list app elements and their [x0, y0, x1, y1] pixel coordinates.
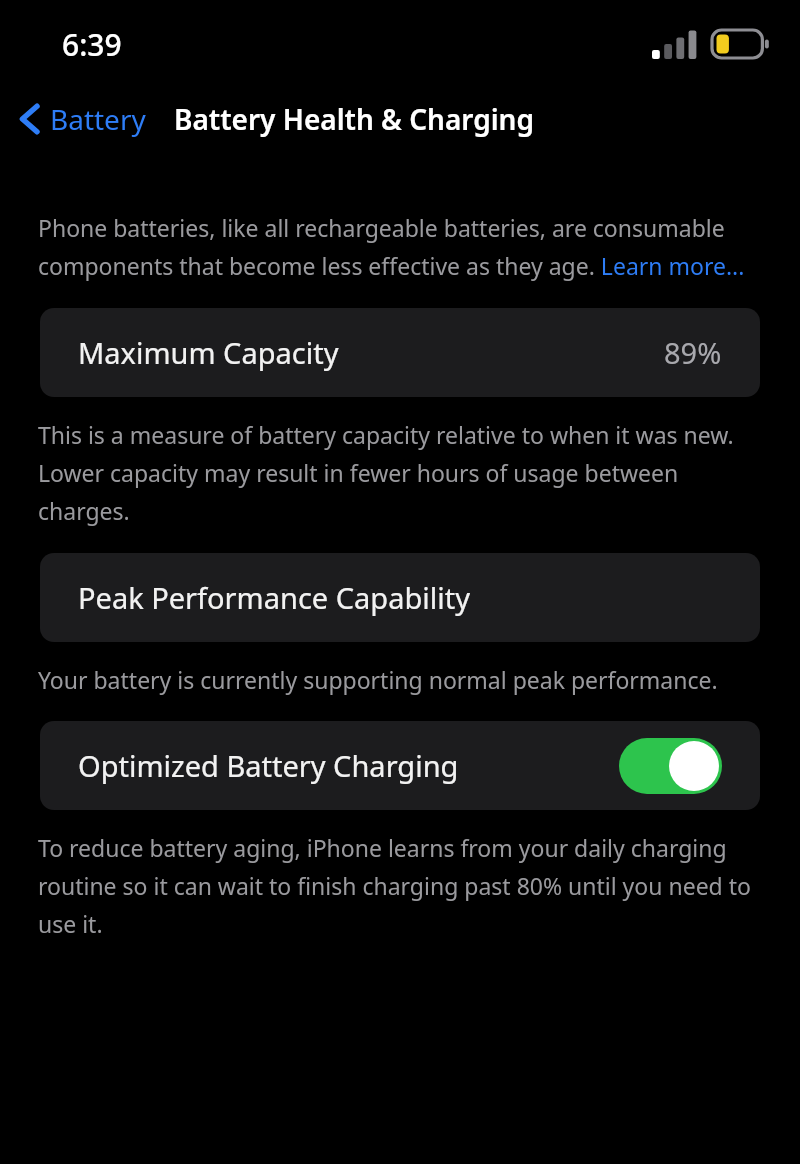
button[interactable]: Peak Performance Capability: [40, 553, 760, 642]
staticText: Battery: [50, 100, 146, 138]
staticText: This is a measure of battery capacity re…: [38, 419, 762, 527]
staticText: Peak Performance Capability: [78, 578, 470, 617]
staticText: Phone batteries, like all rechargeable b…: [38, 212, 762, 282]
staticText: To reduce battery aging, iPhone learns f…: [38, 832, 762, 940]
staticText: Optimized Battery Charging: [78, 746, 459, 785]
button[interactable]: Optimized Battery Charging toggle: [619, 738, 722, 794]
button[interactable]: Back: [0, 94, 154, 144]
staticText: Battery Health & Charging: [174, 100, 534, 138]
button[interactable]: Maximum Capacity: [40, 308, 760, 397]
staticText: Your battery is currently supporting nor…: [38, 664, 718, 695]
staticText: 6:39: [62, 24, 122, 65]
other: Back: [20, 103, 40, 135]
staticText: Maximum Capacity: [78, 333, 339, 372]
button[interactable]: Optimized Battery Charging: [40, 721, 760, 810]
staticText: 89%: [664, 333, 722, 372]
